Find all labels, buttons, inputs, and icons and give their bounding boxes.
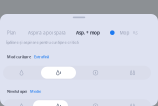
staticText: Plan [7, 30, 16, 36]
staticText: Mod curățare [7, 54, 31, 59]
button[interactable]: As [133, 29, 138, 36]
button[interactable]: Mod 4 [114, 99, 151, 106]
staticText: Nivelul apei [7, 89, 27, 94]
staticText: Mop [120, 29, 130, 36]
button[interactable]: Aspiră apoi spală [28, 29, 76, 36]
button[interactable]: Mod 2 [40, 66, 77, 80]
staticText: Aspiră apoi spală [28, 29, 66, 36]
button[interactable]: Extrafină [34, 54, 49, 59]
staticText: Medie [30, 89, 41, 94]
staticText: Extrafină [34, 54, 49, 59]
button[interactable]: Mod 1 [3, 99, 40, 106]
button[interactable]: Mod 3 [77, 99, 114, 106]
button[interactable]: Mod 1 [3, 66, 40, 80]
button[interactable]: Mod 3 [77, 66, 114, 80]
staticText: Spălare și aspirare pentru curățare crit… [5, 39, 78, 45]
button[interactable]: Asp. + mop [76, 29, 120, 36]
staticText: As [133, 29, 138, 36]
button[interactable]: Plan [0, 30, 28, 36]
button[interactable]: Mod 2 [40, 99, 77, 106]
staticText: Asp. + mop [76, 29, 100, 36]
button[interactable]: Mod 4 [114, 66, 151, 80]
button[interactable]: Medie [30, 89, 41, 94]
button[interactable]: Mop [120, 29, 133, 36]
